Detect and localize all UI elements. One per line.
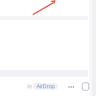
staticText: AirDrop (36, 83, 54, 90)
button[interactable]: More (66, 82, 75, 91)
button[interactable]: AirDrop (33, 83, 58, 89)
button[interactable]: Page settings (25, 82, 34, 91)
button[interactable]: Tabs (81, 82, 90, 91)
